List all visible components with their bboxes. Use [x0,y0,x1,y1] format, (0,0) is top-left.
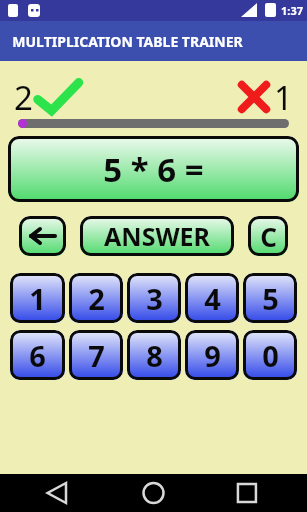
button[interactable]: ANSWER [80,216,234,256]
staticText: 4 [204,279,221,318]
button[interactable]: 1 [10,273,65,323]
button[interactable]: 5 [243,273,297,323]
staticText: 9 [204,336,221,375]
button[interactable]: 4 [185,273,239,323]
staticText: 3 [146,279,163,318]
staticText: 6 [29,336,46,375]
staticText: 5 [262,279,279,318]
staticText: 7 [88,336,105,375]
staticText: 0 [262,336,279,375]
staticText: 2 [14,75,33,119]
staticText: C [260,219,277,254]
button[interactable]: Backspace [19,216,66,256]
button[interactable]: 6 [10,330,65,380]
button[interactable]: 3 [127,273,181,323]
button[interactable]: 8 [127,330,181,380]
button[interactable]: C [248,216,288,256]
staticText: 8 [146,336,163,375]
button[interactable]: 0 [243,330,297,380]
staticText: MULTIPLICATION TABLE TRAINER [12,32,243,51]
button[interactable]: 9 [185,330,239,380]
staticText: 5 * 6 = [103,147,204,192]
staticText: 1:37 [281,3,303,18]
staticText: 1 [29,279,46,318]
staticText: 1 [274,75,293,119]
staticText: 2 [88,279,105,318]
button[interactable]: 5 * 6 = [8,136,299,202]
button[interactable]: 7 [69,330,123,380]
button[interactable]: 2 [69,273,123,323]
staticText: ANSWER [104,219,210,253]
